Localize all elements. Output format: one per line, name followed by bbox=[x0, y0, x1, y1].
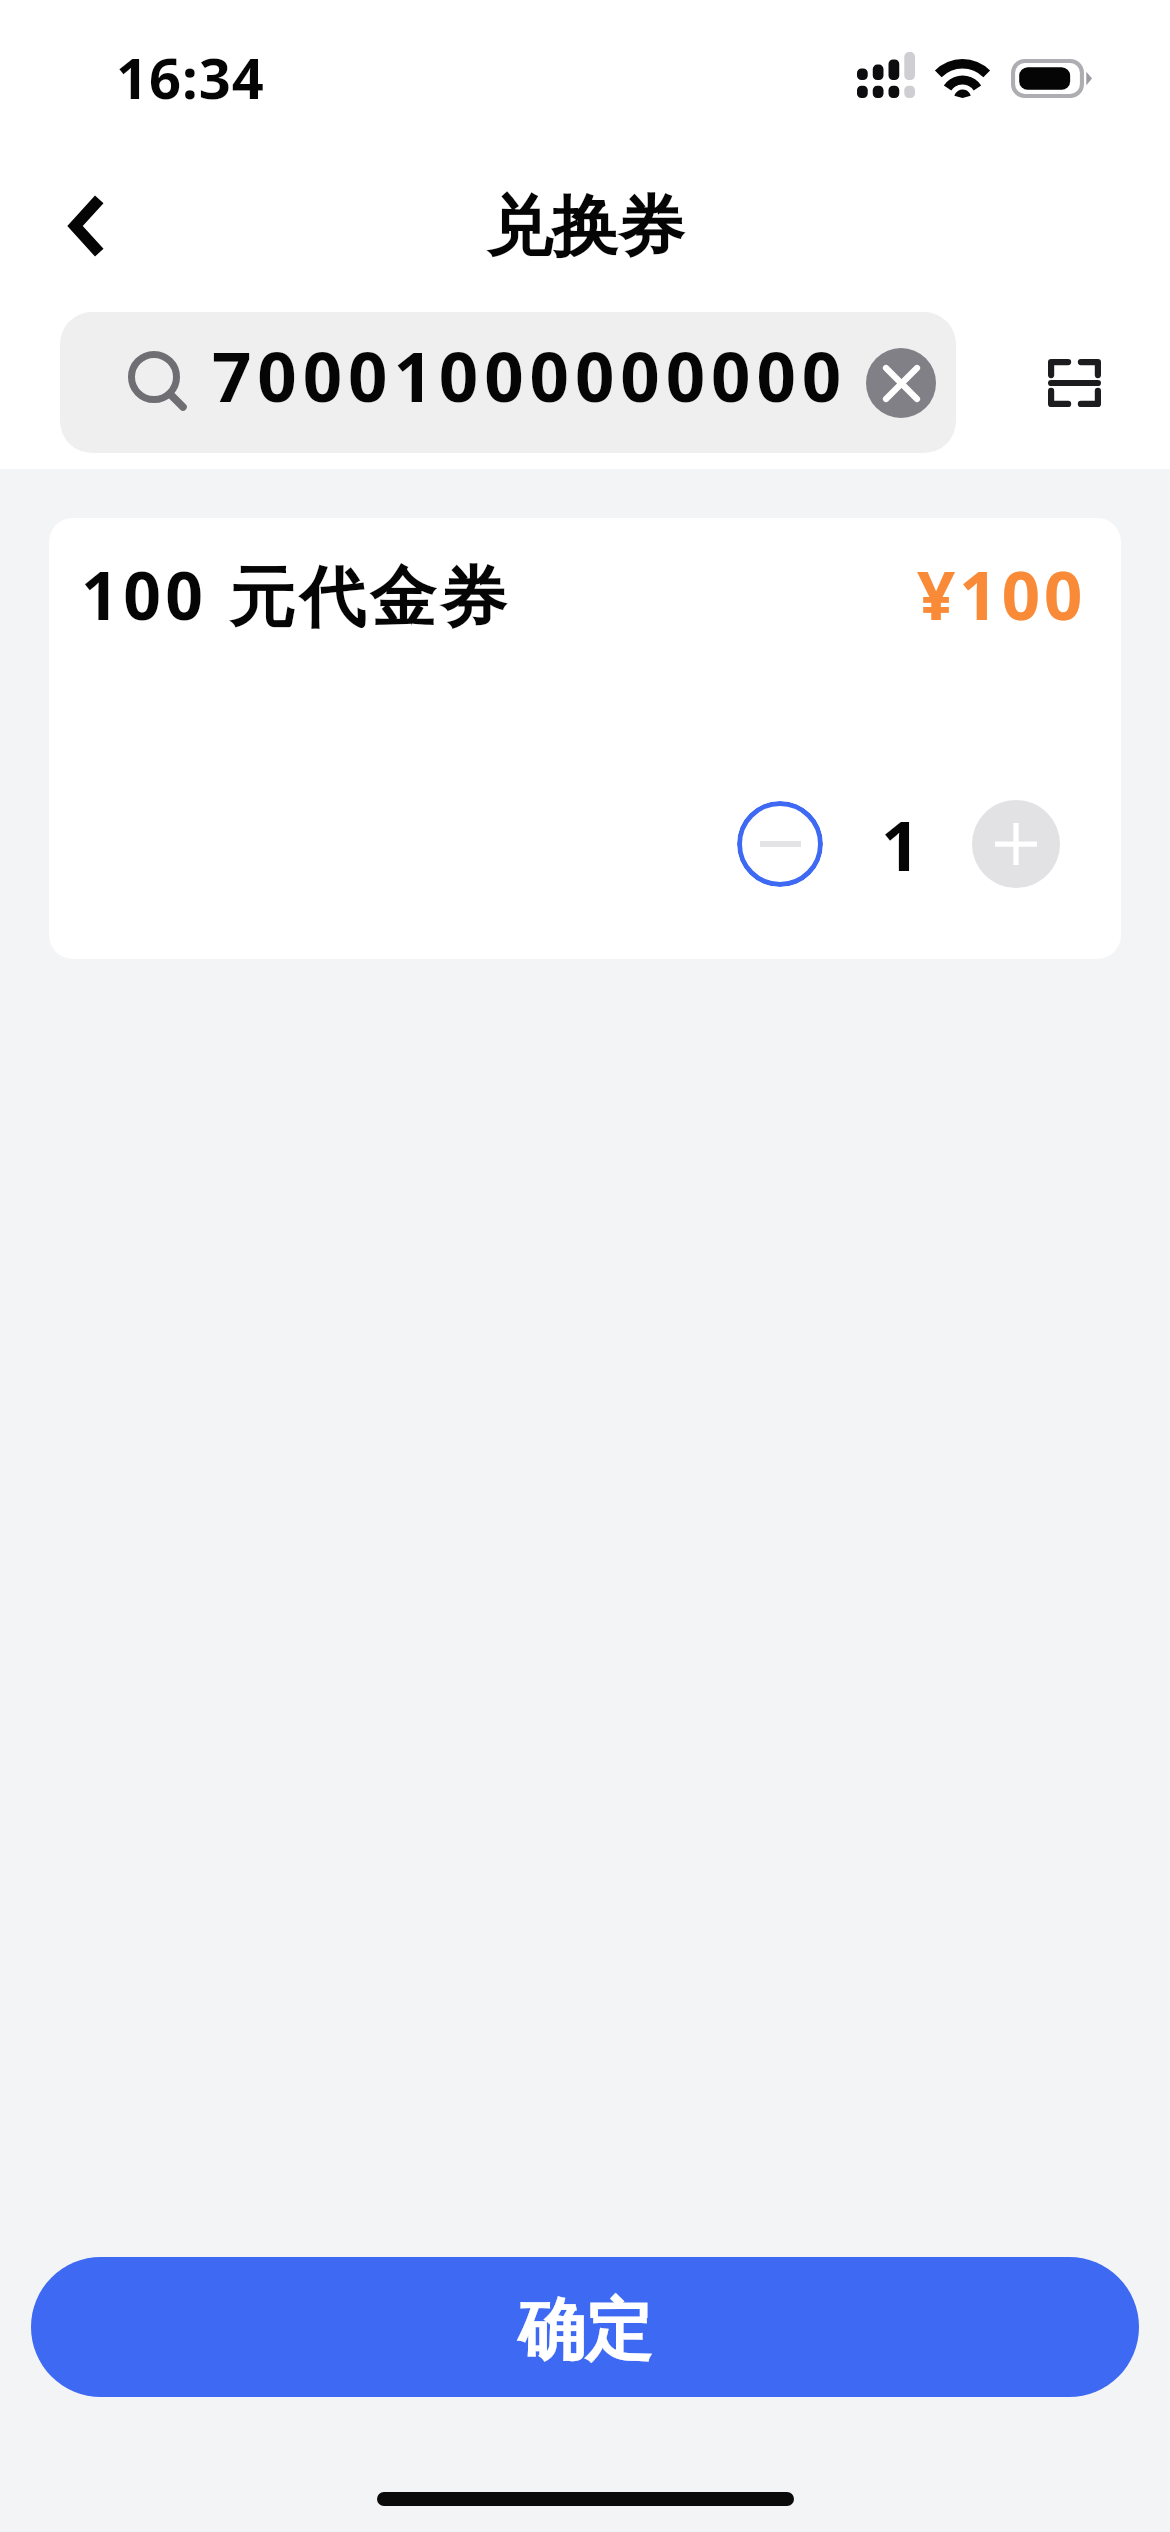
staticText: ¥100 bbox=[917, 548, 1087, 639]
button[interactable]: 确定 bbox=[31, 2257, 1139, 2397]
button[interactable]: Increase quantity bbox=[972, 800, 1060, 888]
staticText: 70001000000000 bbox=[212, 328, 866, 422]
staticText: 确定 bbox=[518, 2288, 652, 2372]
button[interactable]: Decrease quantity bbox=[737, 801, 823, 887]
staticText: 兑换券 bbox=[486, 185, 684, 268]
button[interactable]: Scan barcode bbox=[1018, 327, 1130, 439]
staticText: 100 元代金券 bbox=[81, 549, 511, 639]
button[interactable]: 100 元代金券 bbox=[49, 518, 1121, 959]
staticText: 1 bbox=[881, 798, 920, 884]
button[interactable]: Back bbox=[38, 180, 130, 272]
button[interactable]: 70001000000000 bbox=[60, 312, 956, 453]
button[interactable]: Clear bbox=[866, 348, 936, 418]
staticText: 16:34 bbox=[116, 39, 265, 115]
